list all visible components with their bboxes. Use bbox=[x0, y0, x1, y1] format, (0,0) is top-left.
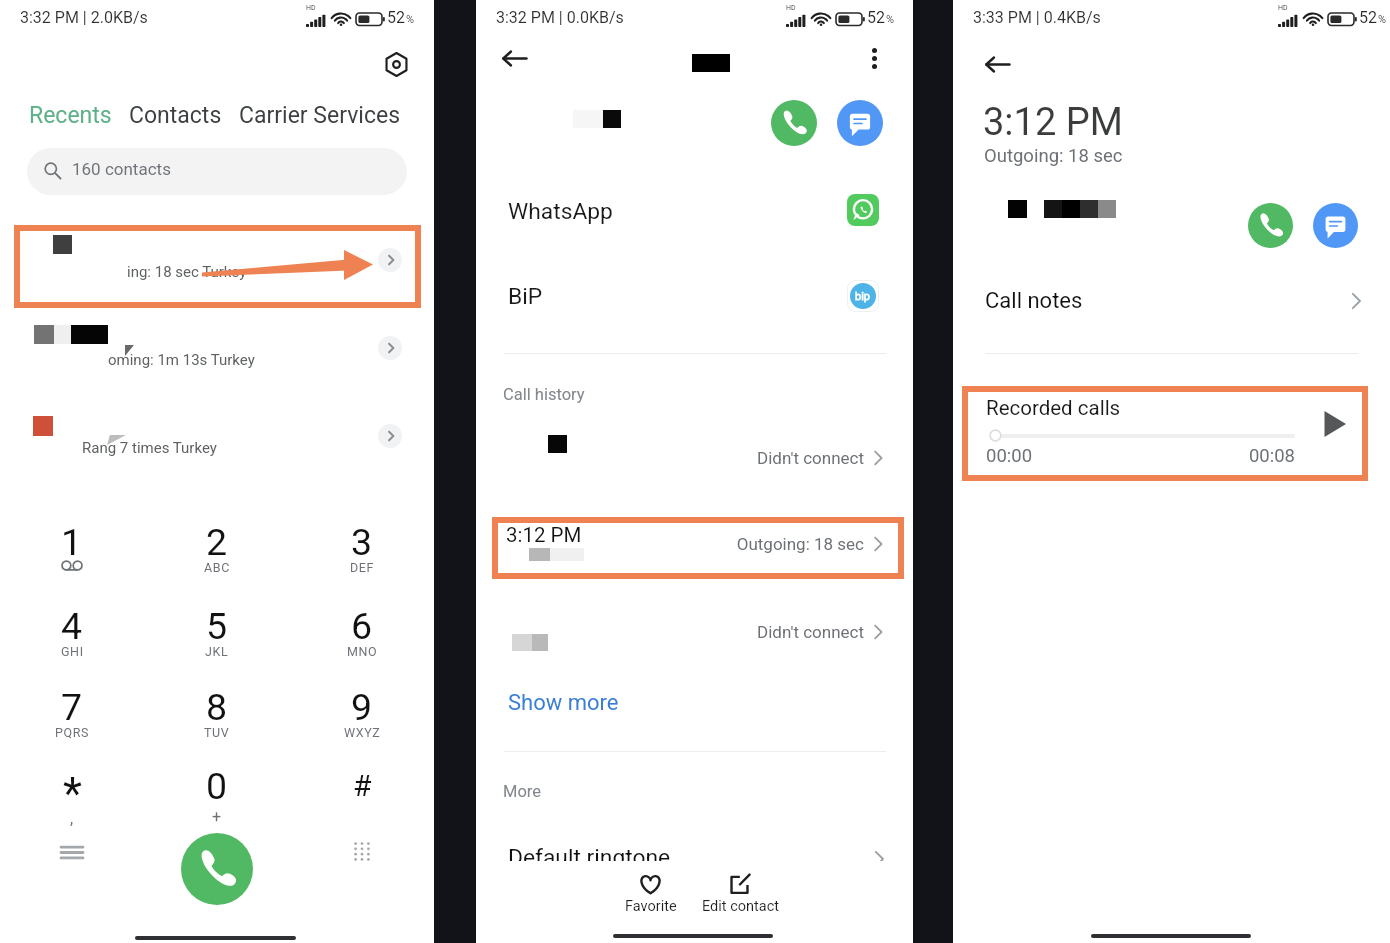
staticText: # bbox=[353, 768, 372, 803]
button[interactable]: Carrier Services bbox=[239, 102, 401, 129]
staticText: + bbox=[212, 807, 222, 826]
button[interactable]: Rang 7 times Turkey bbox=[0, 406, 434, 481]
button[interactable]: Call details bbox=[378, 424, 402, 448]
button[interactable]: 5 bbox=[169, 600, 265, 676]
button[interactable]: BiP bbox=[476, 279, 913, 325]
staticText: oming: 1m 13s Turkey bbox=[108, 351, 255, 369]
staticText: Recorded calls bbox=[986, 396, 1121, 420]
staticText: Didn't connect bbox=[624, 448, 864, 468]
staticText: 00:00 bbox=[986, 445, 1033, 467]
button[interactable]: 160 contacts bbox=[27, 148, 407, 195]
button[interactable]: 2 bbox=[169, 516, 265, 592]
button[interactable]: 8 bbox=[169, 681, 265, 757]
staticText: Default ringtone bbox=[508, 844, 671, 871]
staticText: Outgoing: 18 sec bbox=[984, 145, 1123, 167]
staticText: DEF bbox=[350, 560, 375, 575]
button[interactable]: * bbox=[24, 764, 120, 840]
button[interactable]: Dialpad bbox=[346, 835, 378, 867]
staticText: JKL bbox=[205, 644, 229, 659]
button[interactable]: Call options bbox=[56, 836, 88, 868]
staticText: 52 bbox=[1359, 8, 1377, 27]
staticText: bip bbox=[855, 290, 871, 303]
staticText: 3 bbox=[351, 520, 373, 564]
button[interactable]: Default ringtone bbox=[476, 844, 913, 882]
button[interactable]: Favorite bbox=[625, 866, 687, 920]
staticText: 3:12 PM bbox=[506, 523, 582, 547]
button[interactable]: Edit contact bbox=[702, 866, 782, 920]
staticText: % bbox=[406, 13, 415, 26]
staticText: 160 contacts bbox=[72, 159, 171, 179]
button[interactable]: Send message bbox=[1313, 203, 1358, 248]
staticText: PQRS bbox=[55, 725, 90, 740]
button[interactable]: 1 bbox=[24, 516, 120, 592]
staticText: HD bbox=[786, 4, 796, 12]
staticText: HD bbox=[306, 4, 316, 12]
staticText: MNO bbox=[347, 644, 378, 659]
button[interactable]: Contacts bbox=[129, 102, 222, 129]
button[interactable]: Recents bbox=[29, 102, 112, 129]
staticText: Contacts bbox=[129, 102, 222, 129]
staticText: , bbox=[70, 809, 74, 828]
staticText: TUV bbox=[204, 725, 230, 740]
button[interactable]: Call details bbox=[378, 336, 402, 360]
staticText: 8 bbox=[206, 685, 228, 729]
button[interactable]: Show more bbox=[504, 690, 624, 722]
staticText: 52 bbox=[387, 8, 405, 27]
staticText: 0 bbox=[206, 764, 228, 808]
staticText: Call history bbox=[503, 385, 585, 404]
button[interactable]: 9 bbox=[314, 681, 410, 757]
button[interactable]: Settings bbox=[381, 49, 411, 79]
button[interactable]: Call notes bbox=[953, 288, 1390, 322]
staticText: % bbox=[1378, 13, 1387, 26]
staticText: Didn't connect bbox=[624, 622, 864, 642]
button[interactable]: Back bbox=[492, 36, 536, 80]
button[interactable]: 3:12 PM bbox=[492, 517, 904, 579]
button[interactable]: 3 bbox=[314, 516, 410, 592]
button[interactable]: 0 bbox=[169, 760, 265, 836]
button[interactable]: Call bbox=[1248, 203, 1293, 248]
staticText: Show more bbox=[508, 690, 619, 716]
staticText: Favorite bbox=[625, 898, 677, 915]
staticText: 2 bbox=[206, 520, 228, 564]
button[interactable]: Call bbox=[771, 100, 817, 146]
button[interactable]: More options bbox=[860, 41, 888, 75]
staticText: 3:12 PM bbox=[983, 100, 1123, 145]
button[interactable]: Didn't connect bbox=[476, 430, 913, 472]
staticText: 5 bbox=[206, 604, 228, 648]
staticText: 00:08 bbox=[1175, 445, 1295, 467]
button[interactable]: Send message bbox=[837, 100, 883, 146]
button[interactable]: ing: 18 sec Turkey bbox=[14, 225, 421, 308]
button[interactable]: Didn't connect bbox=[476, 622, 913, 664]
staticText: ing: 18 sec Turkey bbox=[127, 263, 247, 281]
staticText: Edit contact bbox=[702, 898, 779, 915]
button[interactable]: Call bbox=[181, 833, 253, 905]
staticText: More bbox=[503, 782, 542, 801]
staticText: Rang 7 times Turkey bbox=[82, 439, 217, 457]
staticText: 6 bbox=[351, 604, 373, 648]
staticText: BiP bbox=[508, 283, 543, 310]
staticText: WXYZ bbox=[344, 725, 381, 740]
staticText: Carrier Services bbox=[239, 102, 401, 129]
staticText: 52 bbox=[867, 8, 885, 27]
button[interactable]: oming: 1m 13s Turkey bbox=[0, 318, 434, 393]
button[interactable]: # bbox=[314, 764, 410, 840]
staticText: Outgoing: 18 sec bbox=[624, 534, 864, 554]
button[interactable]: Back bbox=[975, 42, 1019, 86]
button[interactable]: Play recording bbox=[1314, 400, 1354, 440]
staticText: WhatsApp bbox=[508, 198, 613, 225]
staticText: 4 bbox=[61, 604, 83, 648]
staticText: * bbox=[63, 768, 82, 814]
staticText: GHI bbox=[61, 644, 84, 659]
staticText: 3:33 PM | 0.4KB/s bbox=[973, 8, 1101, 27]
button[interactable]: 7 bbox=[24, 681, 120, 757]
staticText: ABC bbox=[204, 560, 230, 575]
staticText: % bbox=[886, 13, 895, 26]
button[interactable]: WhatsApp bbox=[476, 194, 913, 240]
staticText: 1 bbox=[61, 520, 83, 564]
button[interactable]: 4 bbox=[24, 600, 120, 676]
staticText: 3:32 PM | 0.0KB/s bbox=[496, 8, 624, 27]
staticText: Call notes bbox=[985, 288, 1083, 314]
staticText: 3:32 PM | 2.0KB/s bbox=[20, 8, 148, 27]
button[interactable]: Call details bbox=[378, 248, 402, 272]
button[interactable]: 6 bbox=[314, 600, 410, 676]
